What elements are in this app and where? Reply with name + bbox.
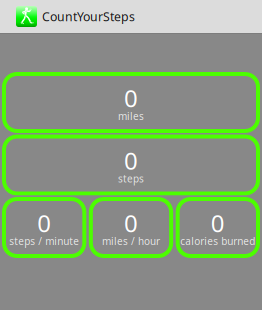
button[interactable]: 0 (2, 72, 260, 133)
button[interactable]: 0 (89, 197, 173, 258)
staticText: CountYourSteps (42, 8, 135, 25)
staticText: 0 (124, 82, 138, 114)
button[interactable]: 0 (176, 197, 260, 258)
staticText: 0 (124, 144, 138, 177)
staticText: 0 (124, 207, 138, 239)
button[interactable]: 0 (2, 134, 260, 195)
staticText: calories burned (180, 234, 255, 248)
staticText: steps / minute (9, 234, 79, 248)
staticText: steps (118, 172, 144, 185)
button[interactable]: 0 (2, 197, 86, 258)
staticText: miles / hour (102, 234, 160, 248)
staticText: miles (118, 109, 144, 123)
staticText: 0 (37, 207, 51, 239)
staticText: 0 (211, 207, 225, 239)
